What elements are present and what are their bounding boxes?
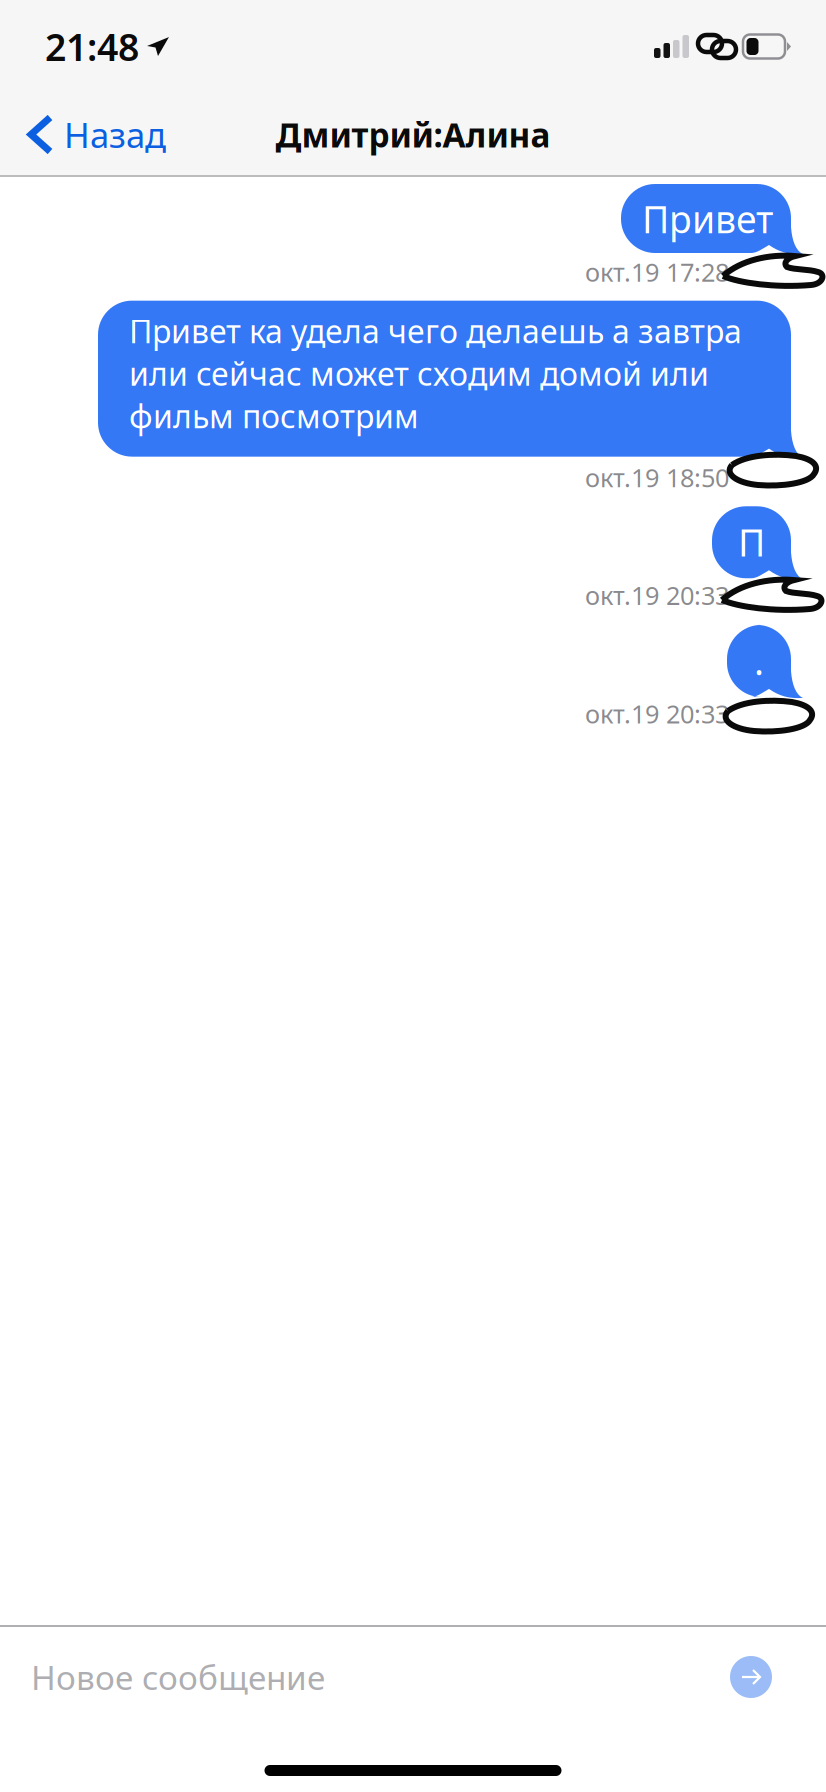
button[interactable]: Назад bbox=[0, 92, 186, 176]
staticText: окт.19 20:33 bbox=[585, 578, 729, 612]
staticText: окт.19 18:50 bbox=[585, 461, 729, 494]
staticText: Привет bbox=[642, 194, 773, 244]
staticText: Дмитрий:Алина bbox=[275, 112, 550, 157]
staticText: Новое сообщение bbox=[31, 1655, 325, 1699]
staticText: Привет ка удела чего делаешь а завтра ил… bbox=[129, 310, 742, 437]
button[interactable]: Send message bbox=[730, 1656, 772, 1698]
staticText: Назад bbox=[64, 111, 166, 157]
staticText: окт.19 17:28 bbox=[585, 255, 729, 289]
staticText: П bbox=[738, 517, 765, 567]
staticText: 21:48 bbox=[45, 22, 139, 71]
staticText: . bbox=[754, 636, 764, 685]
staticText: окт.19 20:33 bbox=[585, 697, 729, 730]
